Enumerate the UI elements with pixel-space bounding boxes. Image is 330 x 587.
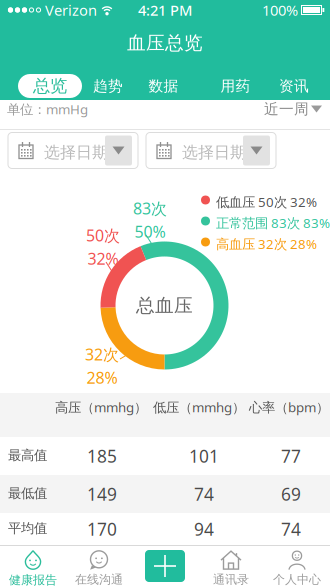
staticText: 74: [281, 517, 301, 540]
staticText: 单位：mmHg: [7, 100, 88, 118]
staticText: 74: [194, 482, 214, 505]
staticText: 高压（mmhg）: [55, 398, 147, 416]
staticText: 高血压 32次 28%: [216, 235, 317, 253]
staticText: 101: [189, 444, 219, 467]
staticText: 32%: [87, 248, 118, 269]
staticText: 100%: [262, 0, 298, 20]
staticText: 近一周: [264, 100, 309, 118]
staticText: 健康报告: [9, 573, 57, 587]
button[interactable]: 添加记录: [132, 545, 198, 587]
staticText: 50%: [134, 221, 165, 242]
staticText: 数据: [148, 77, 178, 95]
staticText: 最高值: [8, 447, 47, 463]
staticText: 选择日期: [44, 142, 108, 162]
staticText: 个人中心: [273, 572, 321, 587]
staticText: 170: [87, 517, 117, 540]
button[interactable]: 个人中心: [264, 545, 330, 587]
staticText: 选择日期: [182, 142, 246, 162]
button[interactable]: 选择日期: [146, 132, 276, 168]
staticText: 总览: [33, 75, 67, 97]
button[interactable]: 通讯录: [198, 545, 264, 587]
staticText: 正常范围 83次 83%: [216, 214, 330, 232]
button[interactable]: 选择日期: [8, 132, 138, 168]
button[interactable]: 近一周: [264, 100, 322, 118]
staticText: 185: [87, 444, 117, 467]
staticText: 血压总览: [127, 31, 203, 54]
button[interactable]: 趋势: [82, 66, 134, 100]
button[interactable]: 在线沟通: [66, 545, 132, 587]
staticText: 83次: [133, 198, 167, 219]
staticText: 趋势: [93, 77, 123, 95]
button[interactable]: 数据: [134, 66, 193, 100]
staticText: 77: [281, 444, 301, 467]
button[interactable]: 总览: [18, 71, 82, 95]
staticText: 通讯录: [213, 572, 249, 587]
button[interactable]: 用药: [193, 66, 278, 100]
staticText: 心率（bpm）: [249, 398, 329, 416]
staticText: 4:21 PM: [138, 0, 192, 20]
staticText: 总血压: [136, 294, 193, 317]
staticText: Verizon: [45, 0, 97, 20]
staticText: 32次: [85, 344, 119, 365]
staticText: 平均值: [8, 520, 47, 536]
staticText: 94: [194, 517, 214, 540]
staticText: 28%: [86, 367, 117, 388]
staticText: 在线沟通: [75, 572, 123, 587]
button[interactable]: 资讯: [278, 66, 310, 100]
staticText: 低压（mmhg）: [153, 398, 245, 416]
staticText: 50次: [86, 225, 120, 246]
button[interactable]: 健康报告: [0, 545, 66, 587]
staticText: 最低值: [8, 485, 47, 501]
staticText: 资讯: [279, 77, 309, 95]
staticText: 149: [87, 482, 117, 505]
staticText: 用药: [220, 77, 250, 95]
staticText: 低血压 50次 32%: [216, 193, 317, 211]
staticText: 69: [281, 482, 301, 505]
